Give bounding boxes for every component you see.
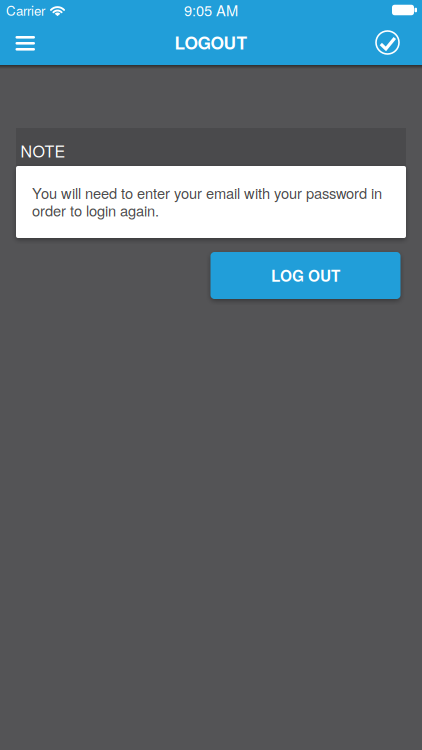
staticText: LOGOUT	[174, 30, 247, 55]
button[interactable]: LOG OUT	[210, 252, 400, 299]
staticText: Carrier	[6, 0, 45, 20]
button[interactable]: Confirm	[374, 29, 401, 56]
staticText: LOG OUT	[271, 264, 340, 286]
staticText: 9:05 AM	[184, 0, 238, 20]
staticText: You will need to enter your email with y…	[32, 182, 382, 221]
staticText: NOTE	[20, 139, 65, 162]
button[interactable]: Menu	[11, 31, 39, 54]
